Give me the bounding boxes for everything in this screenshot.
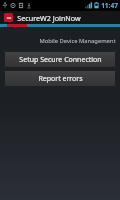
staticText: Setup Secure Connection [19,55,102,65]
staticText: SecureW2 JoinNow [17,13,81,23]
button[interactable]: Setup Secure Connection [4,51,116,68]
staticText: Mobile Device Management [39,37,116,45]
staticText: Report errors [38,74,83,84]
staticText: 11:47 [101,1,118,10]
button[interactable]: Report errors [4,70,116,87]
